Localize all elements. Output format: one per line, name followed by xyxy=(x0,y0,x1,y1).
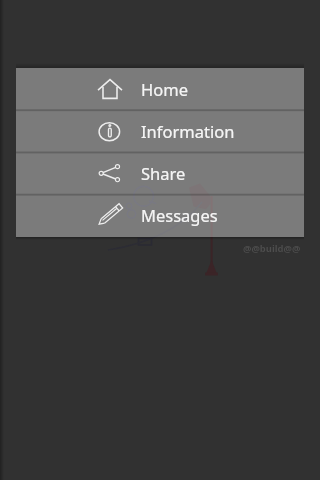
button[interactable]: Messages xyxy=(16,194,304,236)
button[interactable]: Information xyxy=(16,110,304,152)
button[interactable]: Share xyxy=(16,152,304,194)
staticText: Messages xyxy=(141,204,218,226)
staticText: Home xyxy=(141,78,188,100)
staticText: Share xyxy=(141,162,186,184)
staticText: Information xyxy=(141,120,235,142)
staticText: @@build@@ xyxy=(243,242,301,255)
button[interactable]: Home xyxy=(16,68,304,110)
